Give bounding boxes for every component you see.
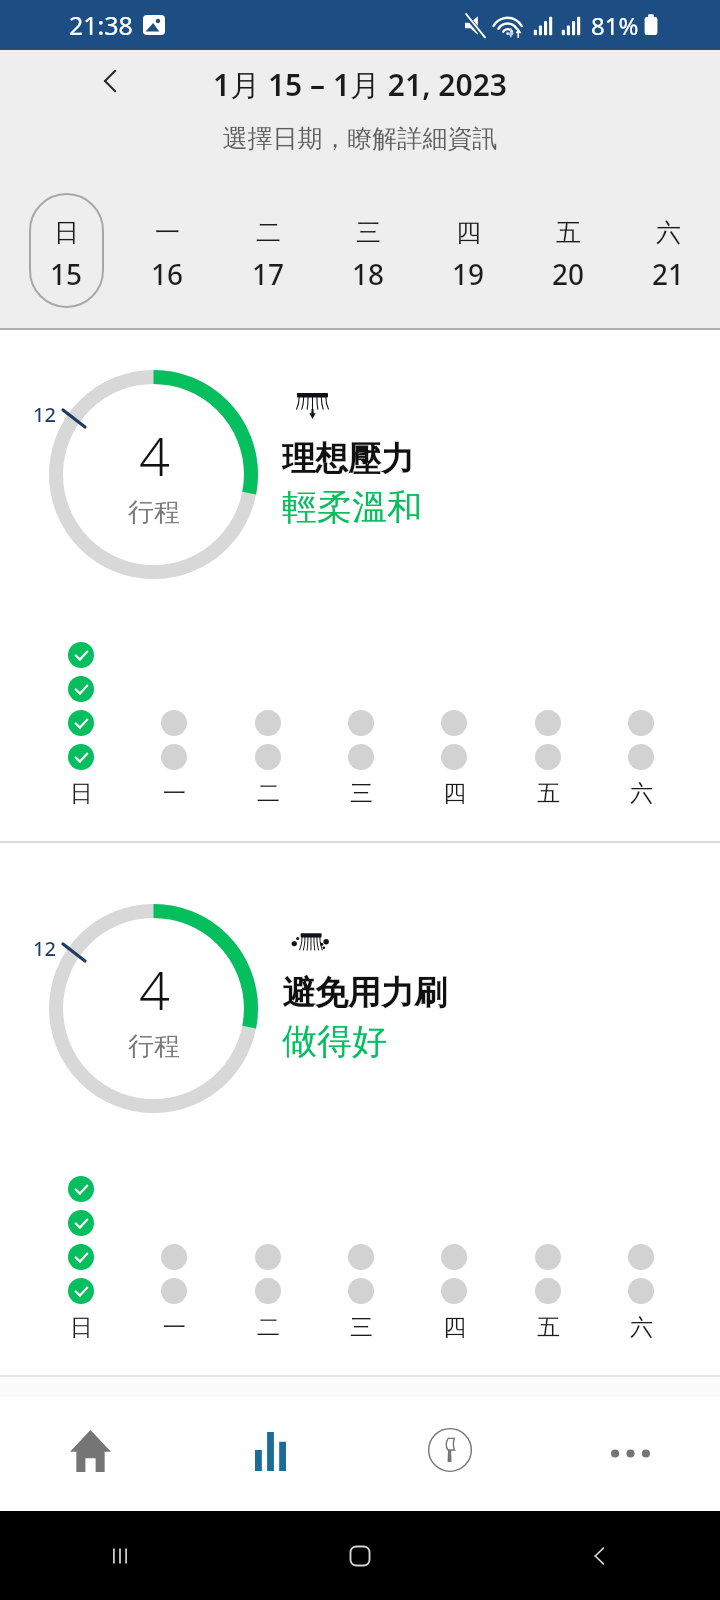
staticText: 三 bbox=[350, 779, 373, 808]
staticText: 日 bbox=[54, 217, 79, 248]
button[interactable]: 四 bbox=[431, 193, 505, 308]
staticText: 行程 bbox=[128, 496, 180, 529]
staticText: 四 bbox=[443, 779, 466, 808]
staticText: 一 bbox=[163, 1313, 186, 1342]
staticText: 1月 15 – 1月 21, 2023 bbox=[213, 64, 507, 105]
staticText: 四 bbox=[443, 1313, 466, 1342]
staticText: 理想壓力 bbox=[282, 438, 414, 480]
staticText: 日 bbox=[70, 779, 93, 808]
button[interactable]: 12 bbox=[0, 330, 720, 841]
button[interactable]: 一 bbox=[130, 193, 205, 308]
staticText: 19 bbox=[452, 255, 485, 293]
staticText: 4 bbox=[139, 418, 170, 492]
staticText: 二 bbox=[256, 217, 281, 248]
staticText: 16 bbox=[151, 255, 184, 293]
staticText: 12 bbox=[33, 935, 56, 962]
button[interactable]: Back bbox=[88, 58, 134, 104]
staticText: 六 bbox=[630, 779, 653, 808]
staticText: 20 bbox=[552, 255, 585, 293]
staticText: 21:38 bbox=[69, 8, 133, 42]
staticText: 21 bbox=[652, 255, 685, 293]
button[interactable]: 二 bbox=[231, 193, 305, 308]
staticText: 五 bbox=[537, 779, 560, 808]
staticText: 六 bbox=[656, 217, 681, 248]
staticText: 一 bbox=[155, 217, 180, 248]
button[interactable]: More options bbox=[540, 1397, 720, 1511]
staticText: 行程 bbox=[128, 1030, 180, 1063]
staticText: 選擇日期，瞭解詳細資訊 bbox=[0, 123, 720, 154]
staticText: 六 bbox=[630, 1313, 653, 1342]
staticText: 81% bbox=[591, 9, 639, 42]
button[interactable]: Home bbox=[0, 1397, 180, 1511]
button[interactable]: 日 bbox=[29, 193, 104, 308]
button[interactable]: 五 bbox=[531, 193, 605, 308]
staticText: 三 bbox=[356, 217, 381, 248]
staticText: 二 bbox=[257, 1313, 280, 1342]
button[interactable]: 三 bbox=[331, 193, 405, 308]
staticText: 三 bbox=[350, 1313, 373, 1342]
staticText: 12 bbox=[33, 401, 56, 428]
staticText: 18 bbox=[352, 255, 385, 293]
button[interactable]: 12 bbox=[0, 843, 720, 1375]
staticText: 日 bbox=[70, 1313, 93, 1342]
staticText: 五 bbox=[556, 217, 581, 248]
staticText: 四 bbox=[456, 217, 481, 248]
staticText: 做得好 bbox=[282, 1019, 387, 1063]
staticText: 15 bbox=[50, 255, 83, 293]
staticText: 17 bbox=[252, 255, 285, 293]
staticText: 避免用力刷 bbox=[282, 972, 447, 1014]
button[interactable]: Brush head bbox=[360, 1397, 540, 1511]
staticText: 輕柔溫和 bbox=[282, 485, 422, 529]
staticText: 二 bbox=[257, 779, 280, 808]
staticText: 4 bbox=[139, 952, 170, 1026]
button[interactable]: 六 bbox=[631, 193, 705, 308]
staticText: 一 bbox=[163, 779, 186, 808]
button[interactable]: Statistics bbox=[180, 1397, 360, 1511]
staticText: 五 bbox=[537, 1313, 560, 1342]
